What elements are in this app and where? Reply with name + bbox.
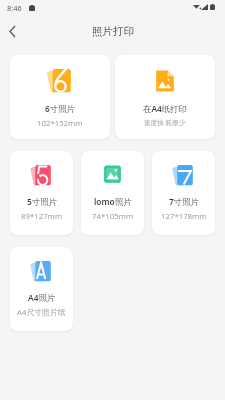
staticText: 7寸照片	[169, 196, 199, 207]
staticText: 照片打印	[92, 25, 134, 38]
button[interactable]: A4照片	[10, 247, 73, 331]
staticText: 5寸照片	[27, 196, 57, 207]
staticText: 6寸照片	[45, 103, 75, 114]
button[interactable]: 5寸照片	[10, 151, 73, 235]
button[interactable]: 6寸照片	[10, 55, 110, 139]
staticText: 在A4纸打印	[143, 103, 188, 114]
staticText: 8:46	[7, 3, 22, 13]
staticText: 89*127mm	[21, 211, 63, 222]
staticText: lomo照片	[94, 196, 132, 207]
staticText: 127*178mm	[161, 211, 207, 222]
staticText: 102*152mm	[37, 118, 83, 129]
staticText: 74*105mm	[92, 211, 134, 222]
button[interactable]: lomo照片	[81, 151, 144, 235]
staticText: 速度快 耗墨少	[144, 118, 186, 127]
button[interactable]: 在A4纸打印	[115, 55, 215, 139]
button[interactable]: 7寸照片	[152, 151, 215, 235]
staticText: A4尺寸照片纸	[17, 307, 66, 318]
button[interactable]: Back	[0, 16, 24, 46]
staticText: A4照片	[28, 292, 56, 303]
